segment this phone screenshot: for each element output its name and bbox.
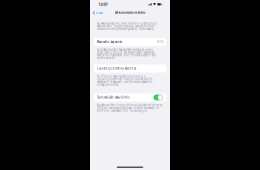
staticText: Ez az akkumulátor kapacitását mutatja az… <box>97 48 156 60</box>
button[interactable]: Csúcsteljesítmény kezelése <box>90 64 170 73</box>
button[interactable]: Maximális kapacitás <box>90 38 170 46</box>
staticText: Az akkumulátor öregedésének csökkentéséh… <box>97 104 162 113</box>
staticText: Optimalizált akkutöltés <box>97 96 129 99</box>
staticText: Az akkumulátorok, mint minden újratölthe… <box>97 22 157 31</box>
button[interactable]: Vissza <box>90 9 102 16</box>
staticText: Maximális kapacitás <box>97 40 122 44</box>
staticText: 12:07 <box>98 2 107 7</box>
staticText: Csúcsteljesítmény kezelése <box>97 67 137 70</box>
staticText: Az iPhone akkumulátora jelenleg a csúcst… <box>97 75 152 86</box>
button[interactable]: Optimalizált akkutöltés <box>90 93 170 102</box>
staticText: Vissza <box>96 11 102 14</box>
staticText: 83% <box>157 40 163 44</box>
staticText: Akkumulátor és töltés <box>115 11 145 14</box>
